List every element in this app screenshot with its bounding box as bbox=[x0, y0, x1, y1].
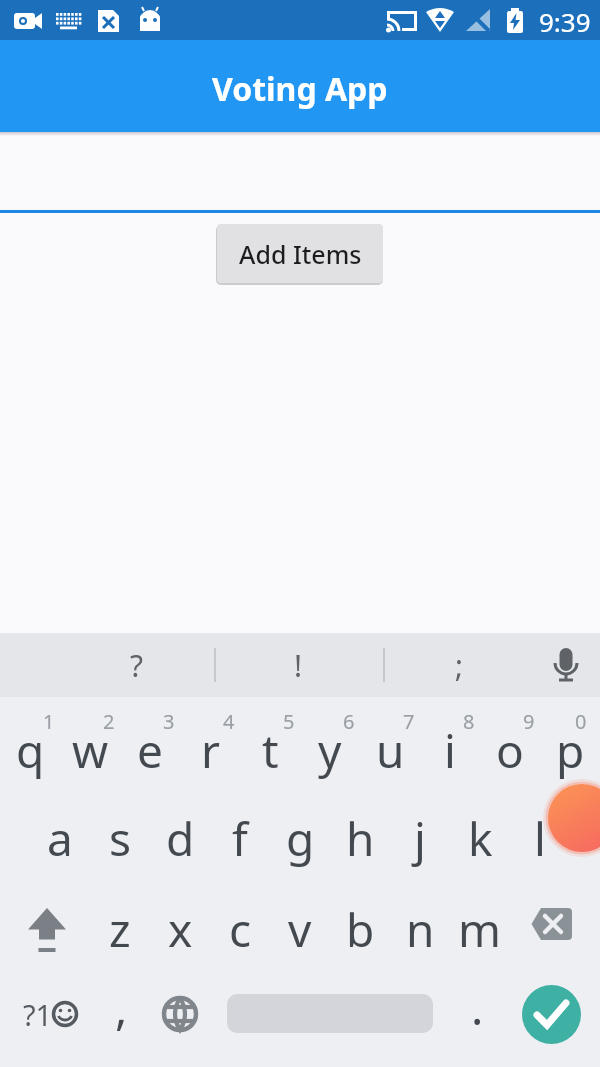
button[interactable] bbox=[546, 645, 586, 687]
staticText: n bbox=[406, 898, 435, 961]
staticText: y bbox=[318, 719, 342, 782]
button[interactable]: w bbox=[60, 715, 120, 785]
staticText: t bbox=[262, 719, 279, 782]
staticText: h bbox=[346, 807, 375, 870]
staticText: o bbox=[496, 719, 524, 782]
button[interactable] bbox=[150, 984, 210, 1044]
staticText: 8 bbox=[463, 708, 475, 734]
staticText: w bbox=[72, 719, 109, 782]
button[interactable]: . bbox=[452, 976, 502, 1036]
button[interactable]: ?1 bbox=[12, 986, 82, 1042]
button[interactable]: k bbox=[450, 803, 510, 873]
button[interactable]: ! bbox=[258, 640, 338, 690]
staticText: ; bbox=[455, 645, 464, 686]
button[interactable]: g bbox=[270, 803, 330, 873]
button[interactable] bbox=[522, 985, 581, 1044]
staticText: r bbox=[201, 719, 220, 782]
button[interactable]: d bbox=[150, 803, 210, 873]
button[interactable] bbox=[523, 899, 583, 959]
staticText: Add Items bbox=[239, 237, 362, 271]
staticText: v bbox=[288, 898, 312, 961]
button[interactable]: p bbox=[540, 715, 600, 785]
staticText: 7 bbox=[403, 708, 415, 734]
staticText: k bbox=[468, 807, 493, 870]
staticText: , bbox=[115, 976, 128, 1036]
staticText: 0 bbox=[575, 708, 587, 734]
staticText: s bbox=[109, 807, 132, 870]
staticText: 3 bbox=[163, 708, 175, 734]
staticText: 6 bbox=[343, 708, 355, 734]
staticText: 1 bbox=[43, 708, 55, 734]
staticText: 2 bbox=[103, 708, 115, 734]
staticText: Voting App bbox=[212, 67, 388, 111]
staticText: u bbox=[376, 719, 405, 782]
staticText: q bbox=[16, 719, 45, 782]
button[interactable]: i bbox=[420, 715, 480, 785]
staticText: p bbox=[556, 719, 585, 782]
button[interactable]: a bbox=[30, 803, 90, 873]
staticText: g bbox=[286, 807, 315, 870]
button[interactable]: y bbox=[300, 715, 360, 785]
button[interactable]: j bbox=[390, 803, 450, 873]
button[interactable]: u bbox=[360, 715, 420, 785]
staticText: x bbox=[168, 898, 193, 961]
staticText: l bbox=[534, 807, 546, 870]
button[interactable]: s bbox=[90, 803, 150, 873]
staticText: j bbox=[414, 807, 426, 870]
button[interactable]: z bbox=[90, 894, 150, 964]
button[interactable]: r bbox=[180, 715, 240, 785]
staticText: i bbox=[444, 719, 456, 782]
button[interactable]: o bbox=[480, 715, 540, 785]
staticText: c bbox=[229, 898, 252, 961]
button[interactable]: q bbox=[0, 715, 60, 785]
button[interactable]: n bbox=[390, 894, 450, 964]
staticText: . bbox=[471, 976, 484, 1036]
button[interactable]: t bbox=[240, 715, 300, 785]
button[interactable]: , bbox=[96, 976, 146, 1036]
button[interactable]: m bbox=[450, 894, 510, 964]
staticText: b bbox=[346, 898, 375, 961]
button[interactable]: ? bbox=[97, 640, 177, 690]
staticText: ! bbox=[294, 645, 303, 686]
staticText: 9:39 bbox=[539, 4, 591, 38]
staticText: f bbox=[232, 807, 248, 870]
button[interactable]: h bbox=[330, 803, 390, 873]
button[interactable]: b bbox=[330, 894, 390, 964]
staticText: ? bbox=[130, 645, 144, 686]
staticText: 5 bbox=[283, 708, 295, 734]
button[interactable]: f bbox=[210, 803, 270, 873]
staticText: 4 bbox=[223, 708, 235, 734]
staticText: 9 bbox=[523, 708, 535, 734]
button[interactable]: v bbox=[270, 894, 330, 964]
button[interactable]: ; bbox=[419, 640, 499, 690]
button[interactable]: c bbox=[210, 894, 270, 964]
staticText: d bbox=[166, 807, 195, 870]
button[interactable] bbox=[17, 899, 77, 959]
button[interactable]: Add Items bbox=[217, 224, 383, 283]
staticText: e bbox=[137, 719, 163, 782]
button[interactable]: l bbox=[510, 803, 570, 873]
staticText: z bbox=[109, 898, 131, 961]
button[interactable]: x bbox=[150, 894, 210, 964]
button[interactable]: e bbox=[120, 715, 180, 785]
staticText: a bbox=[47, 807, 73, 870]
staticText: m bbox=[458, 898, 502, 961]
staticText: ?1 bbox=[23, 995, 53, 1034]
